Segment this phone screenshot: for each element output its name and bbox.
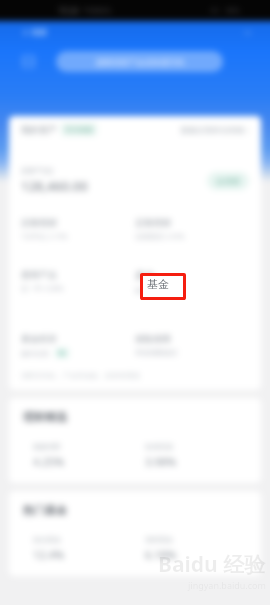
button[interactable]: 保险保障 [135, 333, 249, 357]
staticText: 128,460.00 [21, 177, 88, 195]
staticText: 热门基金 [23, 503, 67, 517]
staticText: 精选好基 [135, 286, 163, 295]
button[interactable]: 扫一扫 [20, 53, 36, 69]
staticText: Baidu 经验 [158, 550, 266, 579]
staticText: 去理财 [216, 176, 240, 186]
staticText: 稳健理财 [33, 442, 61, 451]
staticText: 查看全部持仓明细 › [180, 124, 249, 135]
staticText: 6.18% [145, 547, 177, 562]
staticText: 养老储蓄规划 [135, 348, 177, 357]
button[interactable]: 短债优选 [135, 442, 248, 469]
button[interactable]: 债券基金 [135, 535, 248, 562]
staticText: 安全稳健 [65, 125, 93, 134]
staticText: 10:24 [58, 5, 79, 16]
button[interactable]: 债券产品 [21, 269, 135, 294]
button[interactable]: 返回 [22, 27, 47, 37]
staticText: 理财 [31, 27, 47, 37]
staticText: 12.4% [33, 547, 65, 562]
staticText: 保险保障 [135, 333, 171, 344]
button[interactable]: 查看全部持仓明细 › [180, 124, 249, 135]
staticText: jingyan.baidu.com [188, 579, 266, 591]
staticText: 基金 [147, 277, 169, 291]
button[interactable]: 黄金积存 [21, 333, 135, 358]
staticText: 定期理财 [135, 217, 171, 228]
button[interactable]: 搜索理财产品名称或代码 [56, 51, 223, 72]
staticText: 我的资产 [21, 124, 57, 135]
staticText: 搜索理财产品名称或代码 [96, 57, 184, 67]
staticText: ··· [244, 26, 252, 38]
button[interactable]: 更多 [244, 26, 252, 38]
staticText: 短债优选 [145, 442, 173, 451]
staticText: 3.98% [145, 454, 177, 469]
staticText: 活期理财 [21, 217, 57, 228]
staticText: 基金 [135, 269, 155, 282]
staticText: 债券产品 [21, 269, 57, 280]
button[interactable]: 去理财 [207, 172, 249, 190]
button[interactable]: 基金 [147, 276, 177, 292]
staticText: 业绩基准 3.45% [135, 232, 185, 242]
button[interactable]: 稳健理财 [23, 442, 135, 469]
staticText: 4.25% [33, 454, 65, 469]
button[interactable]: 基金 [135, 269, 249, 295]
staticText: 理财精选 [23, 410, 67, 424]
staticText: 混合基金 [33, 535, 61, 544]
staticText: 债券基金 [145, 535, 173, 544]
button[interactable]: 活期理财 [21, 217, 135, 242]
staticText: 总资产(元) [21, 166, 54, 176]
button[interactable]: 混合基金 [23, 535, 135, 562]
staticText: 黄金积存 [21, 333, 57, 344]
staticText: 热 [59, 349, 65, 357]
button[interactable]: 定期理财 [135, 217, 249, 242]
